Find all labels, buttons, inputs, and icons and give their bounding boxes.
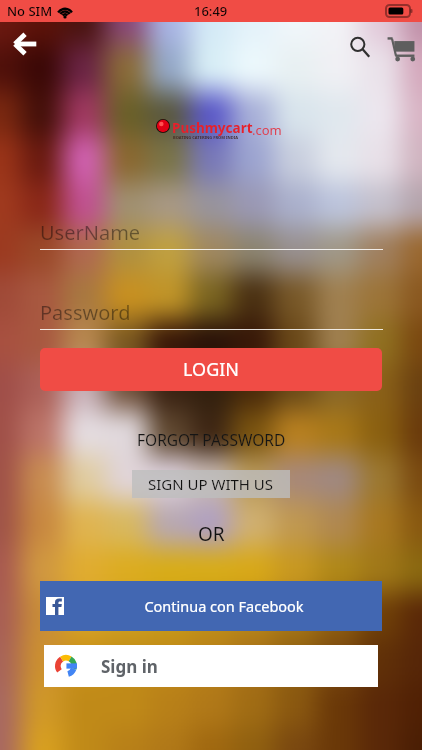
button[interactable]: SIGN UP WITH US <box>132 470 290 498</box>
staticText: BOATING CATERING FROM INDIA <box>173 135 239 140</box>
button[interactable]: Continua con Facebook <box>40 581 382 631</box>
button[interactable]: Cart <box>384 32 418 66</box>
button[interactable]: Sign in <box>44 645 378 687</box>
button[interactable]: Search <box>343 30 377 64</box>
staticText: UserName <box>40 219 141 246</box>
staticText: Continua con Facebook <box>66 596 382 616</box>
staticText: No SIM <box>7 2 53 20</box>
staticText: Sign in <box>101 655 158 678</box>
staticText: Pushmycart <box>172 119 253 137</box>
button[interactable]: LOGIN <box>40 348 382 391</box>
staticText: Password <box>40 299 131 326</box>
staticText: .com <box>252 121 282 139</box>
staticText: OR <box>198 521 225 547</box>
staticText: SIGN UP WITH US <box>148 474 274 494</box>
button[interactable]: Back <box>6 26 44 64</box>
staticText: LOGIN <box>183 357 240 382</box>
button[interactable]: FORGOT PASSWORD <box>137 429 286 450</box>
staticText: 16:49 <box>194 2 228 20</box>
